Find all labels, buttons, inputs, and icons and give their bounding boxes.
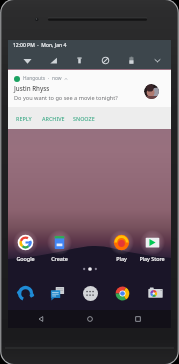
button[interactable]: Chrome	[111, 282, 133, 304]
button[interactable]: Google	[9, 230, 41, 262]
button[interactable]: Home	[75, 310, 105, 328]
button[interactable]: REPLY	[15, 111, 33, 126]
button[interactable]: Camera	[144, 282, 166, 304]
button[interactable]: Quick setting	[14, 51, 40, 69]
button[interactable]: Create	[43, 230, 75, 262]
staticText: Play Store	[139, 255, 165, 262]
button[interactable]: All apps	[79, 282, 101, 304]
button[interactable]: Play Store	[136, 230, 168, 262]
staticText: Create	[51, 255, 68, 262]
staticText: now	[52, 75, 62, 82]
staticText: ·	[48, 75, 50, 82]
button[interactable]: Phone	[14, 282, 36, 304]
staticText: ARCHIVE	[42, 115, 65, 122]
button[interactable]: Quick setting	[40, 51, 66, 69]
staticText: Google	[16, 255, 35, 262]
button[interactable]: Quick setting	[66, 51, 92, 69]
button[interactable]: Quick setting	[92, 51, 118, 69]
staticText: Hangouts	[23, 75, 46, 82]
button[interactable]: Messages	[46, 282, 68, 304]
button[interactable]: Quick setting	[144, 51, 170, 69]
button[interactable]: Recents	[123, 310, 153, 328]
button[interactable]: Play	[105, 230, 137, 262]
button[interactable]: SNOOZE	[72, 111, 96, 126]
button[interactable]: Hangouts	[8, 70, 171, 129]
staticText: Do you want to go see a movie tonight?	[14, 94, 118, 102]
button[interactable]: ARCHIVE	[41, 111, 66, 126]
button[interactable]: Quick setting	[118, 51, 144, 69]
staticText: 12:00 PM · Mon, Jan 4	[13, 42, 67, 49]
staticText: Play	[116, 255, 127, 262]
staticText: REPLY	[16, 115, 32, 122]
button[interactable]: Back	[26, 310, 56, 328]
staticText: Justin Rhyss	[14, 84, 50, 92]
staticText: SNOOZE	[73, 115, 95, 122]
